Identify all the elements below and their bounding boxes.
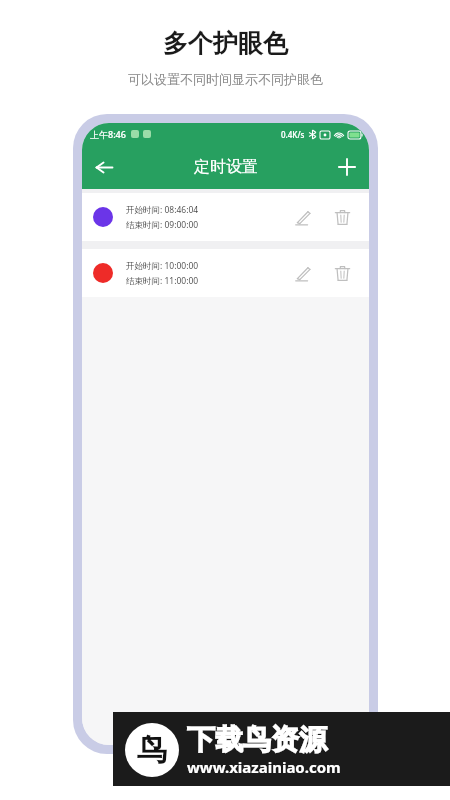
staticText: www.xiazainiao.com — [187, 757, 341, 777]
staticText: 0.4K/s — [281, 129, 305, 140]
staticText: 上午8:46 — [90, 128, 126, 140]
staticText: 可以设置不同时间显示不同护眼色 — [128, 71, 323, 87]
staticText: 开始时间: 10:00:00 — [126, 260, 199, 272]
staticText: 下载鸟资源 — [187, 722, 327, 757]
button[interactable]: 编辑 — [285, 200, 319, 234]
button[interactable]: 开始时间: 10:00:00 — [82, 249, 369, 297]
staticText: 结束时间: 09:00:00 — [126, 219, 199, 231]
button[interactable]: 添加 — [325, 145, 369, 189]
staticText: 开始时间: 08:46:04 — [126, 204, 199, 216]
button[interactable]: 删除 — [325, 256, 359, 290]
button[interactable]: 返回 — [82, 145, 126, 189]
button[interactable]: 删除 — [325, 200, 359, 234]
staticText: 多个护眼色 — [163, 28, 288, 59]
staticText: 结束时间: 11:00:00 — [126, 275, 199, 287]
button[interactable]: 编辑 — [285, 256, 319, 290]
staticText: 定时设置 — [194, 157, 258, 177]
staticText: 鸟 — [137, 731, 167, 769]
button[interactable]: 开始时间: 08:46:04 — [82, 193, 369, 241]
